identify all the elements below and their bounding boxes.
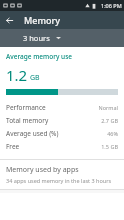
staticText: Memory <box>24 14 61 26</box>
button[interactable]: 3 hours <box>23 33 61 43</box>
staticText: 46% <box>107 130 118 137</box>
button[interactable]: Memory used by apps <box>0 160 124 189</box>
staticText: 1.5 GB <box>101 143 118 150</box>
staticText: Memory used by apps <box>6 165 79 175</box>
staticText: 3 hours <box>23 33 50 43</box>
staticText: 1:06 PM <box>101 2 122 9</box>
button[interactable]: Performance <box>0 101 124 114</box>
button[interactable]: Average used (%) <box>0 127 124 140</box>
button[interactable]: Total memory <box>0 114 124 127</box>
staticText: Average memory use <box>6 52 73 61</box>
staticText: 1.2 <box>6 65 28 85</box>
staticText: 34 apps used memory in the last 3 hours <box>6 177 112 184</box>
button[interactable]: Navigate up <box>0 11 18 29</box>
staticText: Performance <box>6 103 46 112</box>
staticText: Normal <box>98 104 118 111</box>
staticText: Total memory <box>6 116 49 125</box>
button[interactable]: Free <box>0 140 124 153</box>
staticText: Average used (%) <box>6 129 59 138</box>
staticText: Free <box>6 142 20 151</box>
staticText: GB <box>30 73 40 83</box>
staticText: 2.7 GB <box>101 117 118 124</box>
